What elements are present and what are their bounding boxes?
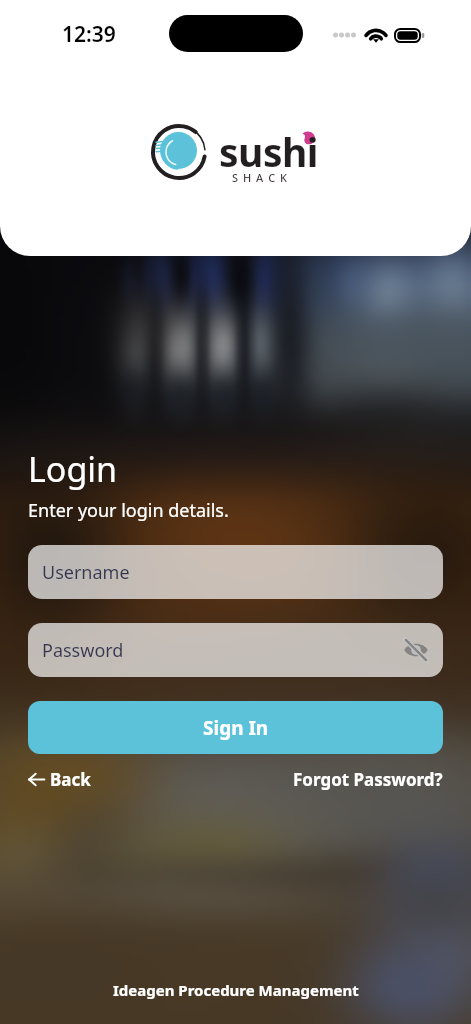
staticText: sushi — [219, 125, 319, 178]
staticText: 12:39 — [62, 20, 116, 49]
button[interactable]: Forgot Password? — [293, 764, 443, 795]
button[interactable]: Password — [28, 623, 443, 677]
staticText: Enter your login details. — [28, 498, 229, 523]
button[interactable]: Sign In — [28, 701, 443, 754]
staticText: S H A C K — [232, 170, 288, 185]
staticText: Login — [28, 446, 118, 492]
staticText: Password — [42, 638, 124, 663]
staticText: Sign In — [203, 715, 269, 741]
button[interactable]: Back — [28, 764, 91, 795]
staticText: Back — [50, 768, 91, 791]
button[interactable]: Username — [28, 545, 443, 599]
button[interactable]: Show password — [403, 637, 429, 663]
staticText: Ideagen Procedure Management — [113, 980, 359, 1000]
staticText: Username — [42, 560, 130, 585]
